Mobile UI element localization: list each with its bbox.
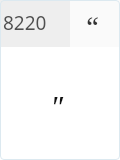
staticText: " bbox=[50, 87, 63, 128]
staticText: 8220 bbox=[3, 10, 47, 36]
staticText: “ bbox=[86, 7, 99, 45]
button[interactable]: Large character preview bbox=[0, 47, 120, 160]
button[interactable]: 8220 bbox=[0, 0, 70, 47]
button[interactable]: Character preview bbox=[70, 0, 120, 47]
